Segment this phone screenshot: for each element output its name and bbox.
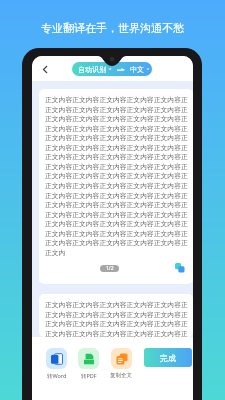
button[interactable]: Copy	[173, 261, 187, 275]
staticText: 复制全文	[110, 372, 132, 379]
staticText: 转Word	[47, 372, 67, 380]
button[interactable]: 自动识别	[72, 62, 152, 76]
button[interactable]: 完成	[144, 348, 192, 367]
button[interactable]: 转Word	[46, 348, 67, 380]
staticText: 自动识别	[78, 65, 106, 74]
staticText: 完成	[160, 353, 176, 363]
staticText: 转PDF	[81, 372, 97, 380]
staticText: 1/2	[106, 265, 114, 272]
button[interactable]: 转PDF	[78, 348, 99, 380]
staticText: 专业翻译在手，世界沟通不愁	[41, 21, 184, 35]
staticText: 中文	[130, 65, 144, 74]
button[interactable]: Back	[36, 60, 54, 78]
button[interactable]: 复制全文	[110, 348, 132, 379]
